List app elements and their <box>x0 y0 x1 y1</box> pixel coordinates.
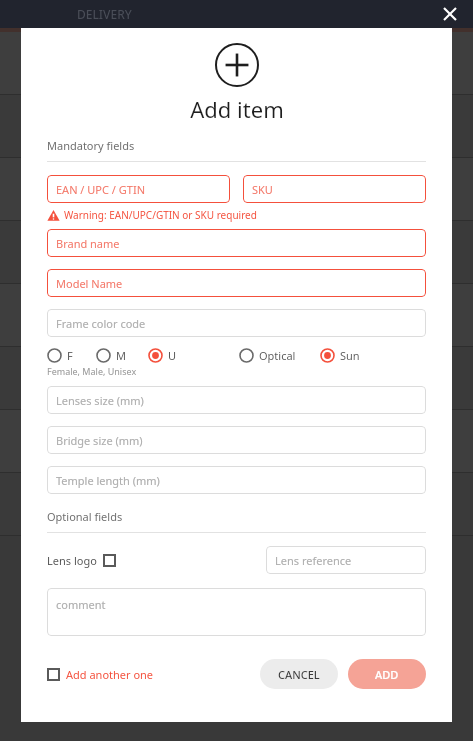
button[interactable]: Add another one <box>47 667 154 682</box>
staticText: Female, Male, Unisex <box>47 365 137 377</box>
button[interactable]: M <box>96 348 126 363</box>
staticText: Add item <box>190 94 284 124</box>
staticText: M <box>116 348 126 363</box>
button[interactable]: Bridge size (mm) <box>47 426 426 454</box>
staticText: DELIVERY <box>77 6 132 22</box>
button[interactable]: Model Name <box>47 269 426 297</box>
staticText: EAN / UPC / GTIN <box>56 182 145 197</box>
staticText: Sun <box>340 348 360 363</box>
staticText: U <box>168 348 177 363</box>
staticText: Optional fields <box>47 509 123 524</box>
staticText: F <box>67 348 73 363</box>
staticText: Temple length (mm) <box>56 473 160 488</box>
button[interactable]: Temple length (mm) <box>47 466 426 494</box>
staticText: comment <box>56 597 106 612</box>
button[interactable]: Lenses size (mm) <box>47 386 426 414</box>
button[interactable]: U <box>148 348 177 363</box>
staticText: Lens reference <box>275 553 352 568</box>
button[interactable]: ADD <box>348 659 426 689</box>
staticText: Brand name <box>56 236 120 251</box>
staticText: Bridge size (mm) <box>56 433 143 448</box>
staticText: CANCEL <box>278 667 320 682</box>
button[interactable]: CANCEL <box>260 659 338 689</box>
button[interactable]: comment <box>47 588 426 636</box>
button[interactable]: Frame color code <box>47 309 426 337</box>
staticText: Lenses size (mm) <box>56 393 144 408</box>
button[interactable]: Optical <box>239 348 296 363</box>
button[interactable]: Lens logo <box>47 553 116 568</box>
staticText: Warning: EAN/UPC/GTIN or SKU required <box>64 208 257 222</box>
staticText: SKU <box>252 182 273 197</box>
staticText: Mandatory fields <box>47 138 135 153</box>
staticText: ADD <box>375 667 399 682</box>
button[interactable]: EAN / UPC / GTIN <box>47 175 230 203</box>
button[interactable]: Close <box>437 1 463 27</box>
button[interactable]: SKU <box>243 175 426 203</box>
staticText: Lens logo <box>47 553 97 568</box>
button[interactable]: F <box>47 348 73 363</box>
staticText: Optical <box>259 348 296 363</box>
button[interactable]: Lens reference <box>266 546 426 574</box>
staticText: Add another one <box>66 667 154 682</box>
button[interactable]: Brand name <box>47 229 426 257</box>
staticText: Frame color code <box>56 316 146 331</box>
button[interactable]: Sun <box>320 348 360 363</box>
staticText: Model Name <box>56 276 123 291</box>
